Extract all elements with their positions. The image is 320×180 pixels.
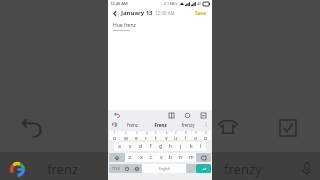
button[interactable]: frenzy — [174, 122, 202, 128]
staticText: 1 — [114, 131, 116, 135]
staticText: q — [113, 135, 117, 140]
staticText: n — [179, 154, 183, 161]
staticText: English — [159, 167, 170, 171]
button[interactable]: Hue frenz — [113, 22, 136, 29]
button[interactable]: 3 — [131, 131, 141, 140]
button[interactable]: Change language — [132, 164, 142, 173]
staticText: i — [185, 135, 187, 140]
button[interactable]: Save — [193, 9, 209, 18]
button[interactable]: n — [176, 153, 186, 162]
staticText: 5 — [155, 131, 157, 135]
button[interactable]: g — [156, 142, 166, 151]
button[interactable]: f — [146, 142, 156, 151]
button[interactable]: l — [196, 142, 206, 151]
staticText: 12:30 AM — [155, 10, 175, 16]
staticText: l — [200, 143, 202, 150]
staticText: 2 — [125, 131, 127, 135]
staticText: 6 — [166, 131, 168, 135]
staticText: y — [165, 135, 168, 140]
staticText: 3 — [136, 131, 138, 135]
staticText: frenz — [47, 160, 79, 178]
staticText: p — [204, 135, 208, 140]
staticText: x — [140, 154, 143, 161]
staticText: k — [190, 143, 193, 150]
button[interactable]: j — [176, 142, 186, 151]
button[interactable]: frenz — [118, 122, 146, 128]
staticText: f — [150, 143, 152, 150]
button[interactable]: 0 — [201, 131, 211, 140]
button[interactable]: Shift — [109, 153, 125, 162]
button[interactable]: x — [136, 153, 146, 162]
button[interactable]: Image — [167, 111, 175, 119]
staticText: 7 — [175, 131, 177, 135]
button[interactable]: . — [186, 164, 196, 173]
staticText: Hue frenz — [113, 22, 136, 29]
staticText: c — [150, 154, 153, 161]
staticText: e — [135, 135, 138, 140]
button[interactable]: Backspace — [196, 153, 211, 162]
staticText: Frenz — [154, 122, 167, 128]
staticText: t — [155, 135, 157, 140]
staticText: z — [129, 154, 132, 161]
button[interactable]: b — [166, 153, 176, 162]
button[interactable]: 5 — [151, 131, 161, 140]
staticText: o — [194, 135, 198, 140]
staticText: . — [190, 166, 192, 172]
button[interactable]: 2 — [120, 131, 131, 140]
staticText: 8 — [185, 131, 187, 135]
staticText: frenzy — [181, 122, 195, 128]
staticText: m — [189, 154, 194, 161]
staticText: frenzy — [224, 160, 262, 178]
staticText: January 13 — [121, 9, 153, 17]
button[interactable]: Enter — [196, 164, 211, 173]
staticText: ?123 — [112, 166, 120, 171]
button[interactable]: 6 — [161, 131, 171, 140]
staticText: 9 — [195, 131, 197, 135]
staticText: frenz — [127, 122, 138, 128]
button[interactable]: a — [114, 142, 125, 151]
button[interactable]: Clipboard — [199, 111, 207, 119]
staticText: 12:40 AM — [110, 1, 128, 6]
staticText: s — [129, 143, 132, 150]
staticText: w — [124, 135, 128, 140]
button[interactable]: m — [186, 153, 196, 162]
button[interactable]: Sticker — [183, 111, 191, 119]
button[interactable]: Frenz — [146, 122, 174, 128]
button[interactable]: 1 — [109, 131, 120, 140]
staticText: r — [145, 135, 148, 140]
staticText: Save — [195, 10, 207, 17]
button[interactable]: s — [125, 142, 136, 151]
staticText: 4 — [146, 131, 148, 135]
button[interactable]: Space — [142, 164, 186, 173]
staticText: a — [118, 143, 121, 150]
staticText: 40 — [197, 1, 202, 6]
button[interactable]: 4 — [141, 131, 151, 140]
staticText: d — [139, 143, 143, 150]
staticText: u — [174, 135, 178, 140]
button[interactable]: Back — [111, 9, 120, 18]
button[interactable]: c — [146, 153, 156, 162]
button[interactable]: More suggestions — [202, 121, 209, 128]
button[interactable]: v — [156, 153, 166, 162]
staticText: j — [180, 143, 182, 150]
staticText: h — [169, 143, 173, 150]
button[interactable]: 7 — [171, 131, 181, 140]
staticText: 0 — [205, 131, 207, 135]
button[interactable]: ?123 — [109, 164, 122, 173]
staticText: g — [159, 143, 163, 150]
button[interactable]: k — [186, 142, 196, 151]
button[interactable]: Emoji — [122, 164, 132, 173]
button[interactable]: Google Search — [111, 121, 118, 128]
button[interactable]: 9 — [191, 131, 201, 140]
button[interactable]: d — [136, 142, 146, 151]
button[interactable]: h — [166, 142, 176, 151]
staticText: v — [160, 154, 163, 161]
button[interactable]: z — [125, 153, 136, 162]
staticText: b — [169, 154, 173, 161]
button[interactable]: 8 — [181, 131, 191, 140]
staticText: 0.1 KB/s — [164, 1, 178, 6]
button[interactable]: Undo — [113, 111, 121, 119]
